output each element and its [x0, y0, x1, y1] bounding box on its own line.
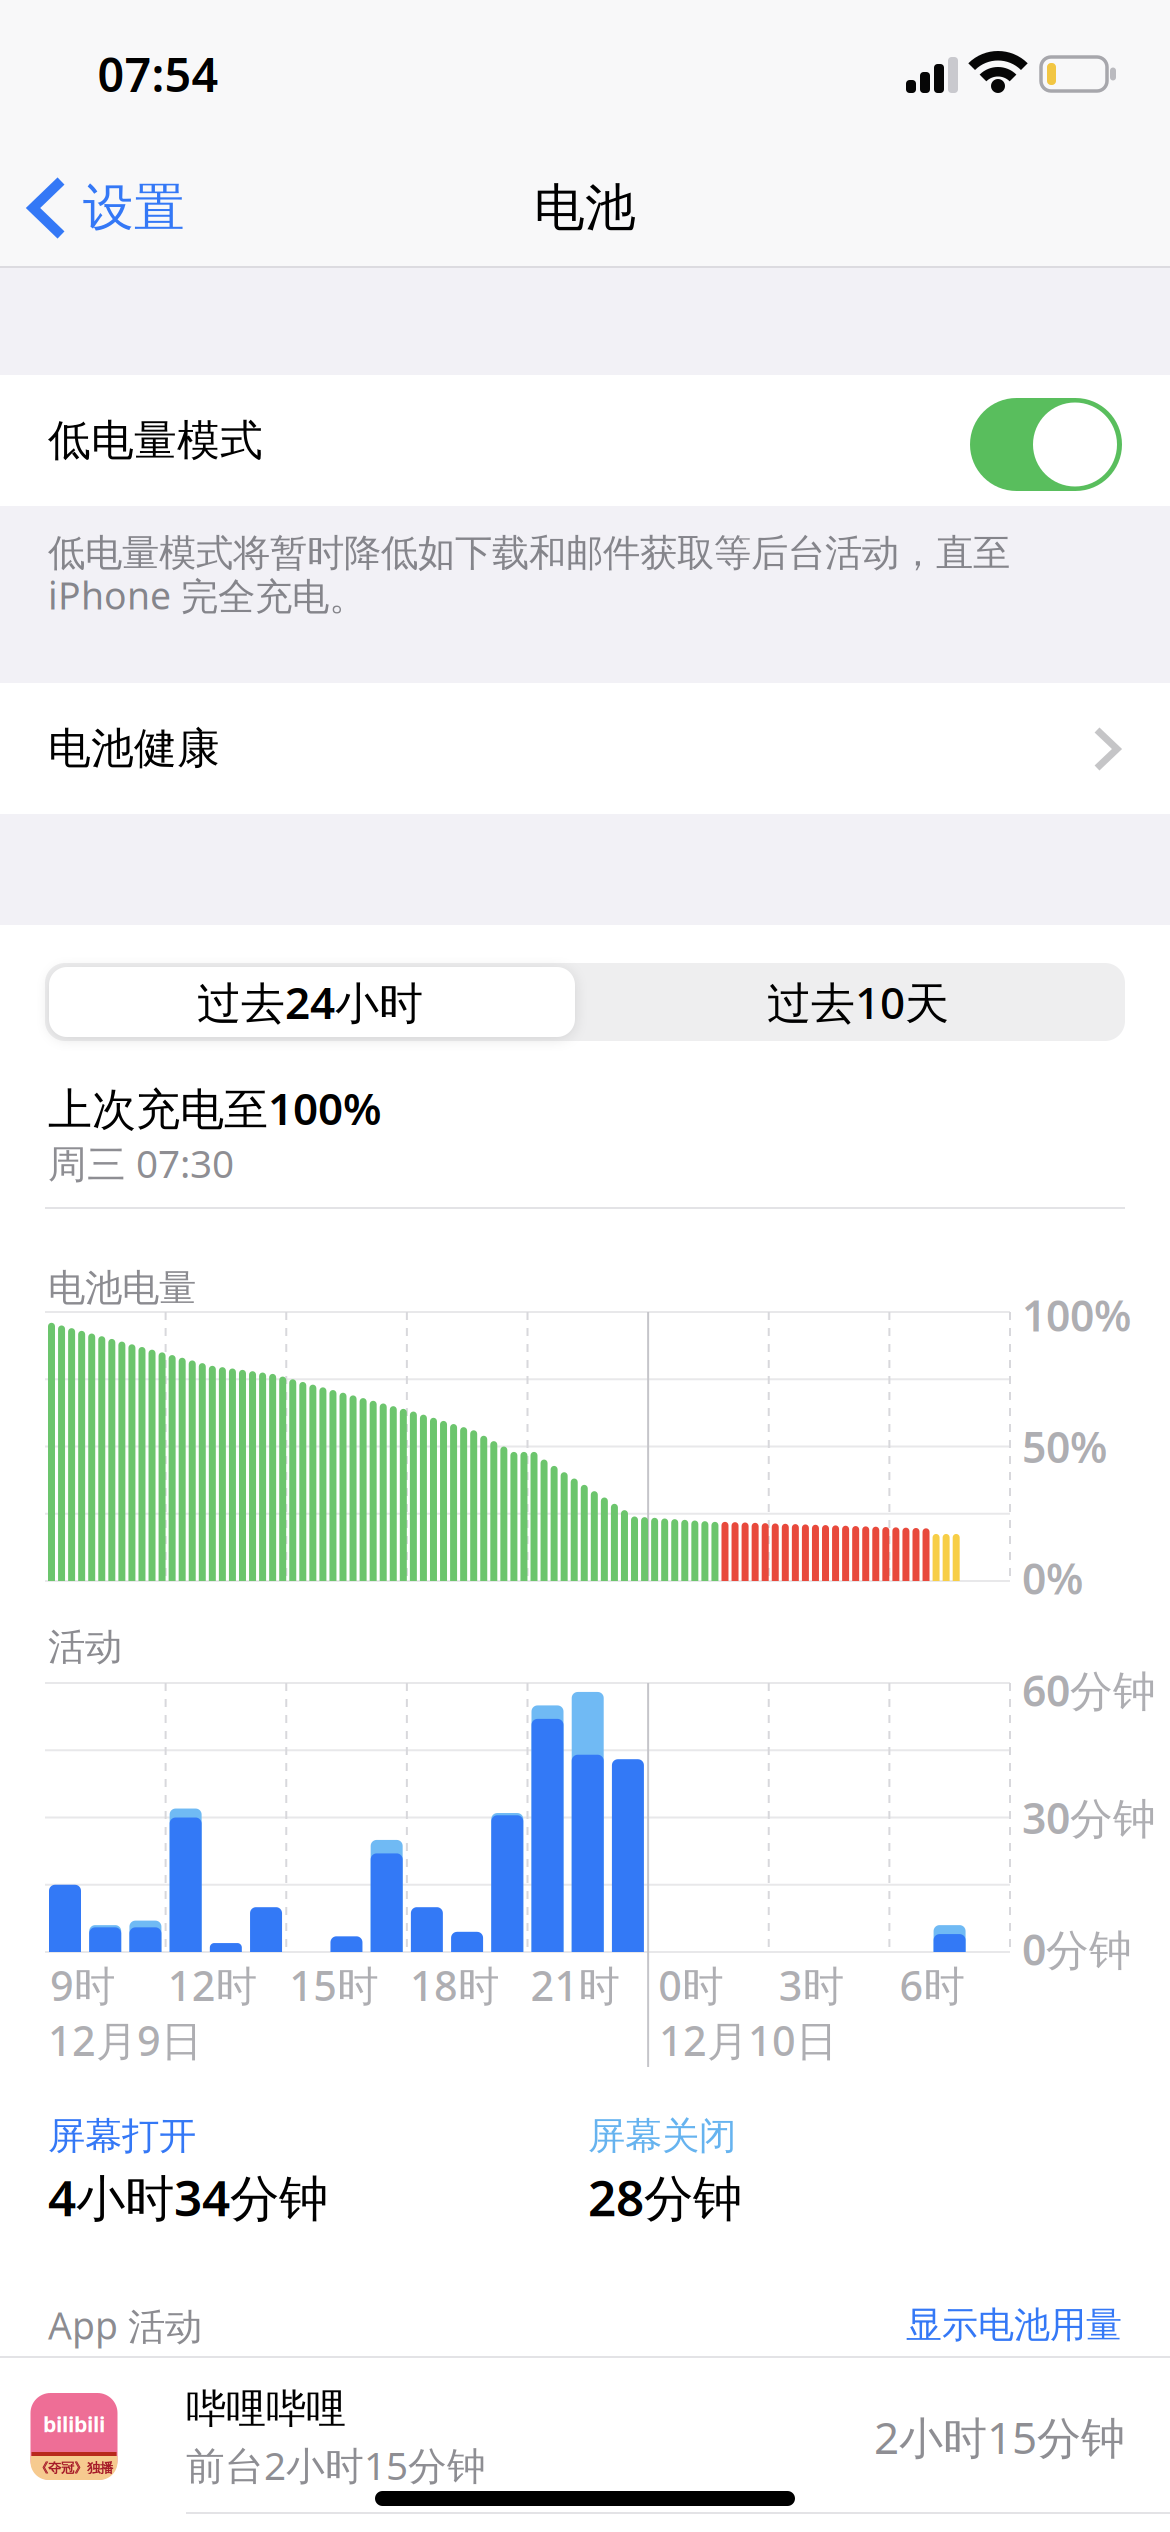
staticText: iPhone 完全充电。 — [48, 570, 366, 620]
staticText: 电池健康 — [48, 722, 220, 775]
button[interactable]: 显示电池用量 — [722, 2299, 1122, 2351]
staticText: 活动 — [48, 1624, 122, 1670]
staticText: 12月9日 — [48, 2013, 202, 2067]
staticText: 60分钟 — [1022, 1662, 1156, 1718]
staticText: 3时 — [779, 1958, 844, 2012]
staticText: 28分钟 — [588, 2164, 742, 2230]
button[interactable]: 过去24小时 — [45, 963, 575, 1041]
button[interactable]: 低电量模式 — [970, 398, 1122, 491]
staticText: 屏幕关闭 — [588, 2113, 736, 2159]
staticText: 过去10天 — [767, 973, 949, 1031]
button[interactable]: bilibili — [0, 2387, 1170, 2532]
staticText: 4小时34分钟 — [48, 2164, 328, 2230]
staticText: 18时 — [410, 1958, 499, 2012]
staticText: 0分钟 — [1022, 1921, 1132, 1977]
staticText: 30分钟 — [1022, 1789, 1156, 1846]
staticText: 显示电池用量 — [906, 2303, 1122, 2347]
button[interactable]: 电池健康 — [0, 683, 1170, 814]
staticText: 100% — [1022, 1287, 1131, 1343]
staticText: bilibili — [43, 2410, 105, 2438]
staticText: 屏幕打开 — [48, 2113, 196, 2159]
staticText: 2小时15分钟 — [874, 2408, 1125, 2466]
staticText: 9时 — [50, 1958, 115, 2012]
staticText: 过去24小时 — [197, 973, 423, 1031]
staticText: 低电量模式 — [48, 414, 263, 467]
staticText: 0% — [1022, 1550, 1083, 1606]
staticText: 12时 — [168, 1958, 257, 2012]
staticText: 电池电量 — [48, 1265, 196, 1311]
staticText: App 活动 — [48, 2300, 202, 2350]
staticText: 上次充电至100% — [48, 1079, 382, 1137]
button[interactable]: 设置 — [33, 178, 185, 238]
staticText: 6时 — [899, 1958, 964, 2012]
staticText: 15时 — [289, 1958, 378, 2012]
staticText: 哔哩哔哩 — [186, 2384, 346, 2433]
staticText: 21时 — [530, 1958, 619, 2012]
staticText: 12月10日 — [659, 2013, 837, 2067]
staticText: 《夺冠》独播 — [35, 2460, 113, 2476]
staticText: 电池 — [534, 177, 636, 239]
staticText: 07:54 — [97, 43, 218, 105]
staticText: 前台2小时15分钟 — [186, 2439, 486, 2491]
staticText: 周三 07:30 — [48, 1137, 234, 1189]
staticText: 设置 — [83, 177, 185, 239]
staticText: 低电量模式将暂时降低如下载和邮件获取等后台活动，直至 — [48, 530, 1010, 576]
button[interactable]: 过去10天 — [593, 963, 1123, 1041]
staticText: 50% — [1022, 1418, 1107, 1475]
staticText: 0时 — [658, 1958, 723, 2012]
